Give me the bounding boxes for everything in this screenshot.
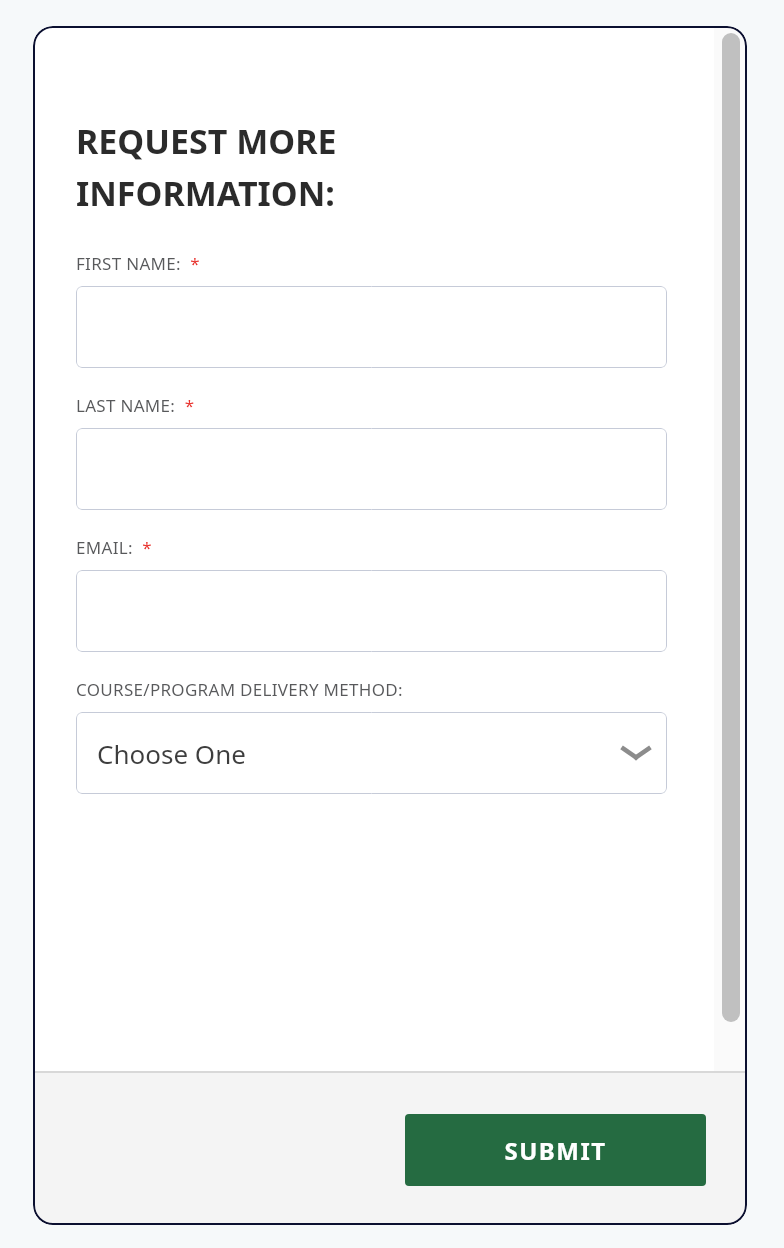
staticText: SUBMIT [504, 1134, 607, 1167]
button[interactable] [76, 428, 667, 510]
staticText: INFORMATION: [76, 170, 335, 216]
button[interactable] [76, 570, 667, 652]
staticText: FIRST NAME: * [76, 252, 200, 275]
staticText: COURSE/PROGRAM DELIVERY METHOD: [76, 678, 403, 701]
staticText: Choose One [97, 736, 246, 771]
staticText: LAST NAME: * [76, 394, 195, 417]
button[interactable]: SUBMIT [405, 1114, 706, 1186]
staticText: EMAIL: * [76, 536, 152, 559]
button[interactable]: Choose One [76, 712, 667, 794]
staticText: REQUEST MORE [76, 118, 337, 164]
button[interactable] [76, 286, 667, 368]
